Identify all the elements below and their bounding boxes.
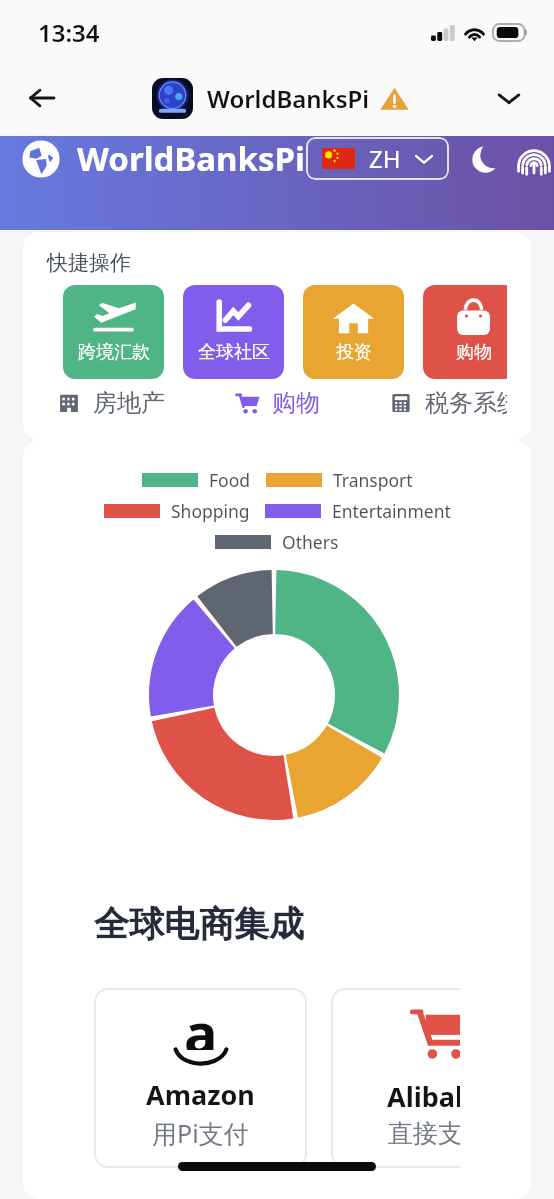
staticText: 直接支付	[388, 1118, 460, 1149]
staticText: Alibaba	[387, 1078, 460, 1115]
button[interactable]: Fingerprint	[513, 138, 554, 180]
staticText: 跨境汇款	[78, 341, 150, 364]
button[interactable]: 税务系统	[389, 388, 507, 418]
staticText: 税务系统	[425, 388, 507, 418]
staticText: 购物	[272, 388, 320, 418]
staticText: 投资	[336, 341, 372, 364]
staticText: Food	[209, 468, 251, 492]
staticText: ZH	[369, 142, 401, 175]
staticText: WorldBanksPi	[207, 82, 370, 115]
staticText: Others	[282, 530, 339, 554]
staticText: 房地产	[93, 388, 165, 418]
staticText: 用Pi支付	[152, 1116, 249, 1150]
staticText: 13:34	[38, 16, 100, 49]
staticText: Amazon	[146, 1076, 255, 1113]
button[interactable]: 投资	[303, 285, 404, 379]
button[interactable]: 全球社区	[183, 285, 284, 379]
button[interactable]: 跨境汇款	[63, 285, 164, 379]
staticText: a	[184, 994, 218, 1050]
button[interactable]: ZH	[306, 137, 449, 180]
staticText: Transport	[333, 468, 413, 492]
button[interactable]: Back	[18, 74, 66, 122]
staticText: Entertainment	[332, 499, 451, 523]
button[interactable]: Expand	[485, 74, 533, 122]
staticText: 快捷操作	[47, 250, 131, 276]
button[interactable]: a	[94, 988, 307, 1168]
button[interactable]: 购物	[236, 388, 320, 418]
button[interactable]: 房地产	[57, 388, 165, 418]
staticText: WorldBanksPi	[77, 136, 305, 181]
button[interactable]: Alibaba	[331, 988, 460, 1168]
button[interactable]: Dark mode	[464, 138, 506, 180]
staticText: 全球社区	[198, 341, 270, 364]
staticText: 购物	[456, 341, 492, 364]
staticText: 全球电商集成	[94, 902, 304, 946]
staticText: Shopping	[171, 499, 250, 523]
button[interactable]: 购物	[423, 285, 507, 379]
